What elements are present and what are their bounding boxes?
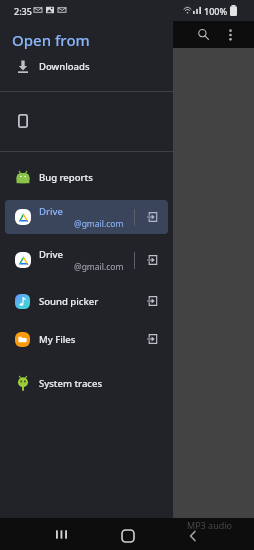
button[interactable]: Downloads bbox=[0, 51, 173, 82]
staticText: 2:35 bbox=[14, 5, 32, 17]
button[interactable]: Bug reports bbox=[0, 162, 173, 193]
button[interactable]: Recents bbox=[53, 526, 70, 543]
button[interactable]: Search bbox=[190, 21, 217, 48]
button[interactable]: My Files bbox=[0, 324, 168, 354]
staticText: Downloads bbox=[39, 60, 90, 73]
button[interactable]: Drive bbox=[5, 243, 168, 277]
staticText: Drive bbox=[39, 205, 63, 218]
staticText: My Files bbox=[39, 333, 76, 346]
staticText: MP3 audio bbox=[187, 519, 233, 531]
staticText: Open from bbox=[12, 30, 90, 50]
button[interactable]: Back bbox=[186, 529, 200, 543]
staticText: Drive bbox=[39, 248, 63, 261]
staticText: System traces bbox=[39, 377, 103, 390]
button[interactable]: System traces bbox=[0, 368, 168, 398]
staticText: 100% bbox=[204, 5, 228, 17]
button[interactable]: Open from bbox=[0, 27, 173, 53]
button[interactable] bbox=[0, 106, 173, 136]
staticText: @gmail.com bbox=[74, 261, 124, 273]
button[interactable]: Drive bbox=[5, 200, 168, 234]
button[interactable]: Sound picker bbox=[0, 286, 168, 316]
staticText: Bug reports bbox=[39, 171, 93, 184]
button[interactable]: More options bbox=[217, 21, 244, 48]
staticText: Sound picker bbox=[39, 295, 99, 308]
staticText: @gmail.com bbox=[74, 218, 124, 230]
button[interactable]: Home bbox=[119, 527, 136, 544]
